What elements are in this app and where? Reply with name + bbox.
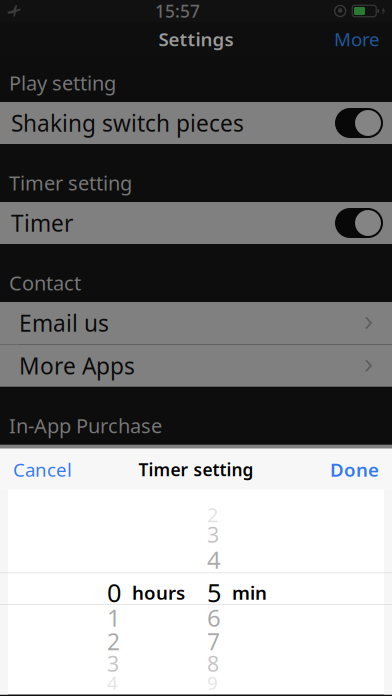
button[interactable]: Timer (0, 202, 392, 244)
staticText: 0 (107, 576, 121, 609)
staticText: 9 (207, 670, 218, 695)
staticText: min (232, 580, 267, 605)
staticText: Done (330, 457, 379, 482)
staticText: 5 (207, 576, 221, 609)
button[interactable]: More Apps (0, 345, 392, 387)
staticText: Timer (11, 208, 73, 238)
staticText: 2 (107, 626, 120, 656)
staticText: Timer setting (9, 169, 132, 196)
staticText: 6 (207, 602, 221, 633)
button[interactable]: Cancel (4, 448, 81, 491)
staticText: 4 (207, 544, 221, 575)
staticText: Contact (9, 269, 81, 296)
staticText: 2 (207, 501, 218, 528)
staticText: 3 (107, 649, 119, 678)
staticText: 15:57 (155, 0, 200, 22)
staticText: 8 (207, 649, 219, 678)
staticText: 1 (107, 602, 121, 633)
staticText: Timer setting (138, 458, 253, 481)
staticText: hours (132, 580, 185, 605)
button[interactable]: Done (321, 448, 388, 491)
staticText: Email us (19, 308, 109, 338)
staticText: Shaking switch pieces (11, 108, 244, 138)
staticText: 7 (207, 626, 220, 656)
button[interactable]: Shaking switch pieces (0, 102, 392, 144)
staticText: In-App Purchase (9, 412, 162, 439)
staticText: Cancel (13, 457, 72, 482)
staticText: 3 (207, 520, 219, 549)
staticText: Settings (158, 27, 233, 51)
staticText: 4 (107, 670, 118, 695)
button[interactable]: More (325, 20, 389, 58)
button[interactable]: Email us (0, 302, 392, 344)
staticText: More Apps (19, 351, 135, 381)
staticText: Play setting (9, 69, 116, 96)
staticText: More (334, 27, 380, 51)
